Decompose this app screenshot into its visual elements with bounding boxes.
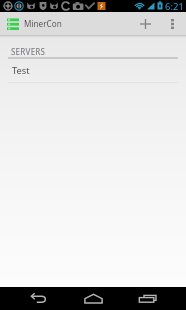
- button[interactable]: Back: [24, 287, 54, 310]
- button[interactable]: More options: [159, 12, 186, 35]
- staticText: 6:21: [165, 0, 184, 12]
- staticText: MinerCon: [24, 18, 62, 29]
- button[interactable]: Test: [0, 59, 186, 82]
- button[interactable]: MinerCon: [0, 12, 186, 35]
- button[interactable]: Recent apps: [133, 287, 163, 310]
- button[interactable]: Home: [78, 287, 109, 310]
- staticText: SERVERS: [11, 46, 46, 57]
- button[interactable]: Add server: [132, 12, 159, 35]
- staticText: Test: [12, 64, 30, 77]
